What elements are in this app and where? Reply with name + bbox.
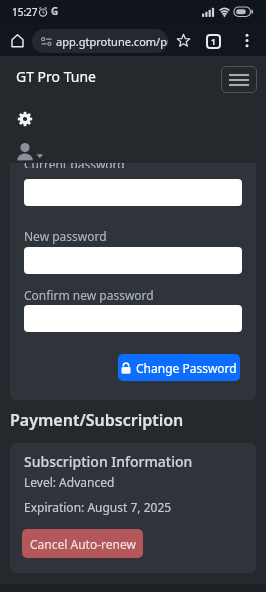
staticText: app.gtprotune.com/pr [56,34,168,49]
staticText: Payment/Subscription [10,409,184,431]
staticText: G [51,4,59,18]
staticText: Subscription Information [24,452,193,471]
button[interactable] [17,111,33,127]
staticText: Confirm new password [24,287,154,303]
staticText: 15:27 [12,5,38,19]
staticText: Level: Advanced [24,474,115,490]
staticText: 1 [211,36,216,47]
button[interactable]: Change Password [118,354,240,381]
staticText: Change Password [136,360,237,376]
button[interactable] [24,247,242,274]
staticText: Current password [24,163,125,168]
button[interactable] [221,66,257,93]
button[interactable] [243,33,251,48]
button[interactable] [10,33,25,48]
staticText: Cancel Auto-renew [30,536,136,552]
staticText: Expiration: August 7, 2025 [24,499,172,515]
button[interactable] [176,33,191,48]
button[interactable]: Cancel Auto-renew [22,529,143,558]
staticText: New password [24,228,107,244]
button[interactable]: 1 [206,34,221,49]
staticText: GT Pro Tune [16,67,96,86]
button[interactable] [15,143,45,161]
button[interactable] [24,179,242,206]
button[interactable] [24,305,242,332]
button[interactable]: app.gtprotune.com/pr [32,29,168,53]
